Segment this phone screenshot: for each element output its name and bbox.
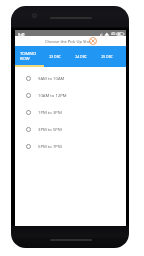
staticText: TOMMO xyxy=(20,51,37,57)
staticText: 25 DEC xyxy=(101,54,113,59)
button[interactable]: Close xyxy=(89,37,97,45)
staticText: 24 DEC xyxy=(75,54,87,59)
staticText: 1PM to 3PM xyxy=(38,110,62,116)
button[interactable]: 9AM to 10AM xyxy=(15,70,126,87)
button[interactable]: 24 DEC xyxy=(68,46,94,67)
staticText: 3PM to 5PM xyxy=(38,127,62,133)
button[interactable]: 3PM to 5PM xyxy=(15,121,126,138)
staticText: ROW xyxy=(20,56,30,62)
staticText: 23 DEC xyxy=(49,54,61,59)
button[interactable]: 5PM to 7PM xyxy=(15,138,126,155)
staticText: Choose the Pick Up Slot xyxy=(45,39,91,45)
button[interactable]: 10AM to 12PM xyxy=(15,87,126,104)
button[interactable]: 25 DEC xyxy=(94,46,120,67)
button[interactable]: 23 DEC xyxy=(42,46,68,67)
staticText: 4G xyxy=(111,31,116,35)
staticText: 9:41 xyxy=(18,32,25,37)
staticText: 10AM to 12PM xyxy=(38,93,67,99)
staticText: 5PM to 7PM xyxy=(38,144,62,150)
button[interactable]: 1PM to 3PM xyxy=(15,104,126,121)
button[interactable]: TOMMO xyxy=(15,46,44,67)
staticText: 9AM to 10AM xyxy=(38,76,65,82)
